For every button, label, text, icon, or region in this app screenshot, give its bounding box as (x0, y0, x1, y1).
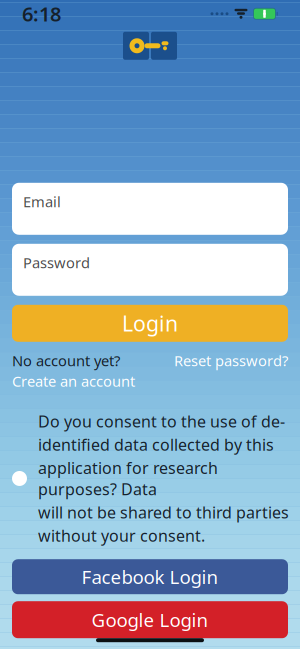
button[interactable]: Login (12, 305, 288, 342)
staticText: Email (23, 192, 61, 211)
button[interactable]: Facebook Login (12, 559, 288, 594)
button[interactable]: Google Login (12, 601, 288, 638)
staticText: identified data collected by this (38, 434, 274, 455)
staticText: without your consent. (38, 525, 205, 546)
button[interactable]: Create an account (12, 371, 135, 391)
staticText: Create an account (12, 371, 135, 391)
button[interactable]: Consent to use of de-identified data (0, 411, 300, 546)
staticText: will not be shared to third parties (38, 502, 289, 523)
staticText: Login (122, 309, 178, 337)
staticText: application for research purposes? Data (38, 457, 218, 500)
staticText: No account yet? (12, 351, 120, 370)
staticText: Reset password? (174, 351, 288, 370)
staticText: Facebook Login (81, 564, 218, 589)
staticText: Do you consent to the use of de- (38, 411, 285, 432)
staticText: 6:18 (22, 0, 61, 27)
staticText: Google Login (91, 607, 208, 632)
staticText: Password (23, 253, 90, 272)
button[interactable]: Reset password? (174, 351, 288, 370)
